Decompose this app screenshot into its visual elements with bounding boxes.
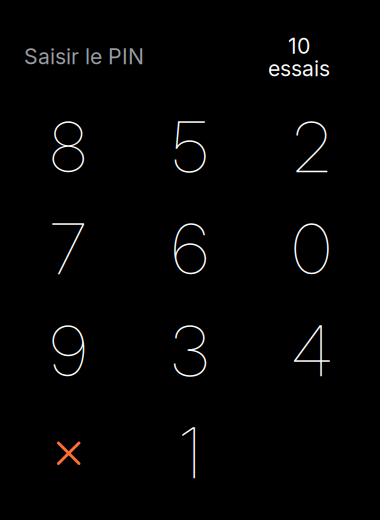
staticText: essais [268,55,330,81]
button[interactable]: 9 [7,300,129,402]
staticText: 8 [50,105,86,189]
staticText: 5 [172,105,207,189]
staticText: 2 [293,105,330,189]
button[interactable]: 3 [129,300,251,402]
button[interactable]: Delete [7,402,129,504]
staticText: 10 [288,33,310,59]
button[interactable]: 2 [251,96,373,198]
staticText: 1 [179,411,200,495]
button[interactable]: 6 [129,198,251,300]
staticText: 6 [172,207,208,291]
button[interactable]: 1 [129,402,251,504]
staticText: 9 [50,309,86,393]
button[interactable]: 4 [251,300,373,402]
button[interactable]: 8 [7,96,129,198]
staticText: 3 [171,309,208,393]
button[interactable]: 0 [251,198,373,300]
button[interactable]: 7 [7,198,129,300]
staticText: 0 [292,207,331,291]
staticText: 4 [292,309,332,393]
staticText: Saisir le PIN [24,43,144,69]
staticText: 7 [50,207,86,291]
button[interactable]: 5 [129,96,251,198]
